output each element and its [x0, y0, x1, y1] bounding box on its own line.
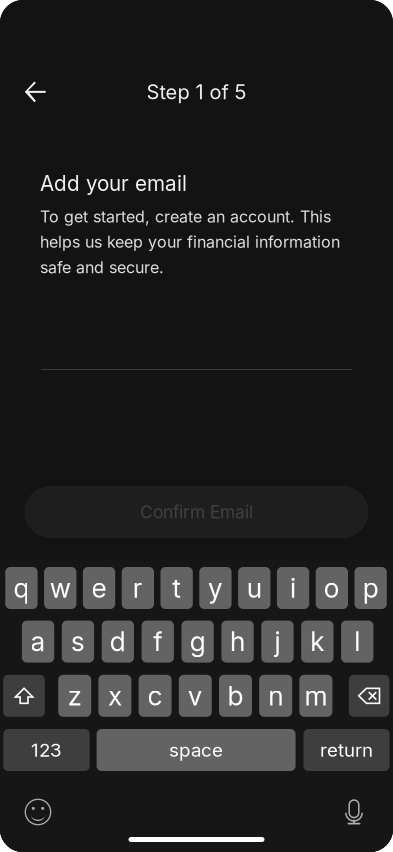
button[interactable]: z	[58, 675, 91, 717]
staticText: o	[324, 572, 340, 604]
button[interactable]: h	[221, 621, 254, 663]
staticText: g	[190, 625, 206, 658]
staticText: t	[172, 572, 181, 604]
staticText: Confirm Email	[140, 501, 253, 522]
button[interactable]: e	[83, 567, 115, 609]
button[interactable]: Dictate	[332, 790, 376, 834]
button[interactable]: m	[299, 675, 332, 717]
staticText: c	[148, 680, 163, 712]
staticText: x	[108, 680, 122, 712]
button[interactable]: Confirm Email	[24, 486, 368, 538]
button[interactable]: a	[22, 621, 54, 663]
staticText: return	[320, 739, 373, 761]
staticText: a	[30, 625, 45, 658]
button[interactable]: v	[179, 675, 212, 717]
button[interactable]: c	[139, 675, 172, 717]
staticText: j	[274, 625, 280, 658]
button[interactable]: d	[102, 621, 134, 663]
button[interactable]: return	[303, 729, 390, 771]
staticText: q	[13, 572, 29, 604]
button[interactable]: Emoji	[16, 790, 60, 834]
button[interactable]: o	[316, 567, 348, 609]
button[interactable]: w	[44, 567, 76, 609]
staticText: e	[91, 572, 106, 604]
button[interactable]: space	[97, 729, 296, 771]
staticText: y	[208, 572, 223, 604]
staticText: Add your email	[40, 171, 187, 196]
staticText: n	[268, 680, 283, 712]
button[interactable]: n	[259, 675, 292, 717]
staticText: Step 1 of 5	[146, 80, 246, 104]
staticText: k	[310, 625, 324, 658]
staticText: l	[354, 625, 360, 658]
staticText: m	[304, 680, 327, 712]
staticText: f	[153, 625, 162, 658]
staticText: space	[169, 739, 223, 761]
staticText: r	[133, 572, 143, 604]
button[interactable]: u	[238, 567, 270, 609]
button[interactable]: b	[219, 675, 252, 717]
button[interactable]: k	[301, 621, 333, 663]
button[interactable]: Shift	[3, 675, 45, 717]
button[interactable]: r	[122, 567, 154, 609]
button[interactable]: q	[5, 567, 38, 609]
button[interactable]: t	[160, 567, 193, 609]
staticText: h	[230, 625, 245, 658]
staticText: i	[290, 572, 296, 604]
staticText: p	[363, 572, 379, 604]
button[interactable]: Delete	[349, 675, 389, 717]
staticText: s	[71, 625, 85, 658]
button[interactable]: g	[181, 621, 214, 663]
staticText: v	[188, 680, 203, 712]
staticText: 123	[31, 739, 62, 761]
button[interactable]: j	[261, 621, 294, 663]
staticText: To get started, create an account. This …	[40, 207, 340, 277]
staticText: z	[68, 680, 82, 712]
button[interactable]: f	[142, 621, 174, 663]
staticText: d	[110, 625, 126, 658]
button[interactable]: i	[277, 567, 309, 609]
button[interactable]: s	[62, 621, 94, 663]
button[interactable]: p	[354, 567, 387, 609]
staticText: w	[50, 572, 71, 604]
button[interactable]: x	[98, 675, 131, 717]
button[interactable]: Back	[14, 70, 58, 114]
button[interactable]: 123	[3, 729, 90, 771]
staticText: u	[247, 572, 262, 604]
button[interactable]: l	[341, 621, 373, 663]
button[interactable]: y	[199, 567, 232, 609]
staticText: b	[227, 680, 243, 712]
